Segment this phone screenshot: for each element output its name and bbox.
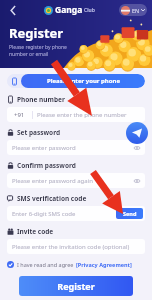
- staticText: Set password: [17, 128, 61, 137]
- staticText: Club: [84, 7, 95, 14]
- button[interactable]: Phone tab: [7, 74, 21, 88]
- button[interactable]: Please enter password: [7, 140, 145, 155]
- staticText: Send: [123, 210, 137, 217]
- staticText: I have read and agree: [17, 261, 74, 268]
- staticText: Please enter the phone number: [37, 111, 127, 119]
- button[interactable]: I have read and agree: [7, 261, 132, 268]
- button[interactable]: Back: [5, 2, 21, 18]
- button[interactable]: Send: [116, 208, 143, 219]
- button[interactable]: Please enter password again: [7, 173, 145, 188]
- staticText: Please enter the invitation code (option…: [12, 243, 130, 251]
- staticText: Please enter your phone: [47, 77, 120, 85]
- staticText: SMS verification code: [17, 194, 87, 203]
- staticText: Ganga: [55, 4, 83, 16]
- staticText: Invite code: [17, 227, 54, 236]
- staticText: Register: [57, 280, 95, 292]
- staticText: EN: [132, 7, 140, 14]
- button[interactable]: Register: [19, 276, 133, 296]
- button[interactable]: Please enter your phone: [21, 74, 145, 88]
- staticText: Please register by phone number or email: [9, 44, 83, 58]
- staticText: Register: [9, 24, 64, 42]
- staticText: +91: [14, 111, 25, 119]
- staticText: Confirm password: [17, 161, 76, 170]
- button[interactable]: EN: [119, 4, 147, 16]
- staticText: [Privacy Agreement]: [76, 261, 132, 268]
- staticText: Please enter password again: [12, 177, 93, 185]
- button[interactable]: +91: [7, 107, 145, 122]
- staticText: Enter 6-digit SMS code: [12, 210, 76, 218]
- button[interactable]: Please enter the invitation code (option…: [7, 239, 145, 254]
- button[interactable]: Support chat: [126, 122, 148, 144]
- staticText: Phone number: [17, 95, 65, 104]
- staticText: Please enter password: [12, 144, 76, 152]
